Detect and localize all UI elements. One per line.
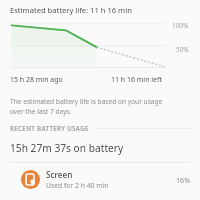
staticText: 15 h 28 min ago — [10, 75, 63, 85]
staticText: Screen — [46, 169, 73, 180]
staticText: 15h 27m 37s on battery — [10, 141, 124, 155]
staticText: 16% — [176, 175, 191, 185]
staticText: 100% — [172, 21, 189, 30]
staticText: Estimated battery life: 11 h 16 min — [10, 5, 132, 15]
other: Screen usage — [25, 174, 36, 185]
staticText: The estimated battery life is based on y… — [10, 97, 163, 106]
button[interactable]: Screen usage — [0, 163, 200, 196]
staticText: RECENT BATTERY USAGE — [10, 124, 89, 132]
staticText: over the last 7 days. — [10, 107, 72, 116]
staticText: 11 h 16 min left — [111, 75, 162, 85]
staticText: Used for 2 h 40 min — [46, 181, 109, 190]
staticText: 50% — [176, 45, 189, 54]
